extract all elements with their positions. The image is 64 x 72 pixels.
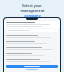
- button[interactable]: [4, 34, 60, 40]
- staticText: Select your: [22, 3, 42, 8]
- button[interactable]: [4, 40, 60, 46]
- button[interactable]: [4, 52, 60, 58]
- button[interactable]: [4, 46, 60, 52]
- button[interactable]: [6, 65, 58, 68]
- staticText: company: [24, 13, 41, 18]
- button[interactable]: Search: [6, 29, 58, 32]
- staticText: management: [20, 8, 45, 13]
- button[interactable]: [4, 58, 60, 64]
- button[interactable]: [4, 69, 60, 70]
